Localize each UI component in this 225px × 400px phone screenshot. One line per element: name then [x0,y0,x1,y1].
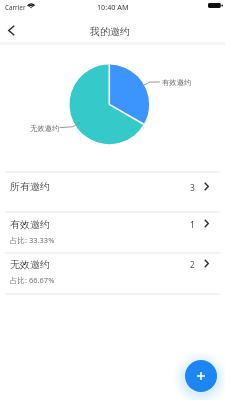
staticText: 10:40 AM [97,2,129,12]
staticText: 有效邀约 [162,78,192,87]
staticText: 我的邀约 [90,25,130,38]
staticText: Carrier [5,3,26,11]
button[interactable] [0,214,225,254]
staticText: 无效邀约 [30,124,60,133]
staticText: 占比: 33.33% [10,235,55,245]
button[interactable]: Back [0,14,30,45]
staticText: 所有邀约 [10,180,50,193]
button[interactable] [0,172,225,213]
staticText: 无效邀约 [10,258,50,271]
staticText: 1 [190,219,195,230]
button[interactable] [0,254,225,294]
staticText: 2 [190,259,195,270]
staticText: 有效邀约 [10,218,50,231]
staticText: 3 [190,182,195,193]
button[interactable]: Add [185,360,217,392]
staticText: 占比: 66.67% [10,275,55,285]
